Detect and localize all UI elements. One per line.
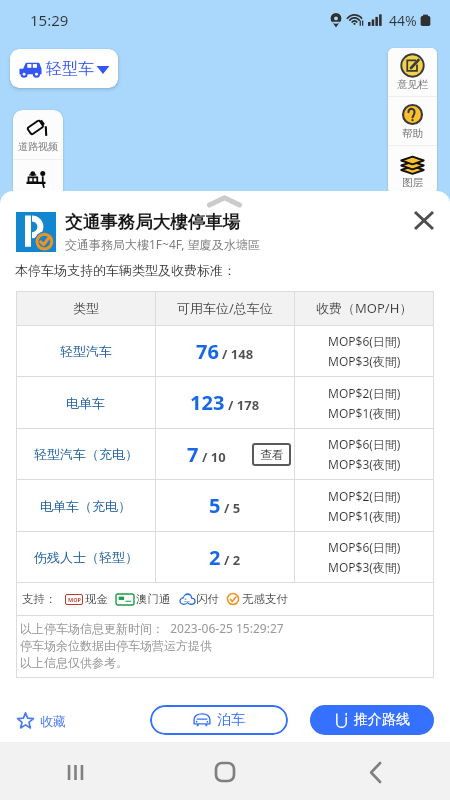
staticText: MOP$1(夜間) bbox=[328, 405, 401, 421]
staticText: 闪付 bbox=[196, 592, 219, 606]
button[interactable]: 帮助 bbox=[388, 97, 437, 145]
staticText: 停车场余位数据由停车场营运方提供 bbox=[20, 638, 212, 653]
staticText: 泊车 bbox=[217, 711, 245, 729]
staticText: 5 bbox=[209, 492, 221, 519]
staticText: / 10 bbox=[202, 448, 226, 466]
staticText: 76 bbox=[196, 338, 219, 365]
button[interactable]: 推介路线 bbox=[310, 705, 434, 735]
staticText: MOP$3(夜間) bbox=[328, 559, 401, 575]
button[interactable]: 图层 bbox=[388, 146, 437, 194]
staticText: 收费（MOP/H） bbox=[316, 299, 413, 317]
staticText: 以上停车场信息更新时间： 2023-06-25 15:29:27 bbox=[20, 620, 284, 636]
button[interactable]: 泊车 bbox=[150, 705, 288, 735]
staticText: / 5 bbox=[224, 499, 241, 517]
button[interactable]: Home bbox=[150, 742, 300, 800]
staticText: 本停车场支持的车辆类型及收费标准： bbox=[15, 262, 236, 278]
staticText: MOP bbox=[68, 596, 81, 603]
staticText: 伤残人士（轻型） bbox=[34, 549, 138, 565]
staticText: 44% bbox=[389, 11, 417, 30]
button[interactable]: Recents bbox=[0, 742, 150, 800]
staticText: MOP$6(日間) bbox=[328, 436, 401, 452]
staticText: MOP$1(夜間) bbox=[328, 508, 401, 524]
staticText: 电单车（充电） bbox=[40, 498, 131, 514]
staticText: MOP$6(日間) bbox=[328, 333, 401, 349]
staticText: 推介路线 bbox=[354, 711, 410, 729]
staticText: 无感支付 bbox=[242, 592, 288, 606]
staticText: 可用车位/总车位 bbox=[177, 299, 273, 317]
staticText: 7 bbox=[187, 441, 199, 468]
staticText: / 148 bbox=[222, 345, 254, 363]
button[interactable]: 意见栏 bbox=[388, 48, 437, 96]
staticText: / 2 bbox=[224, 551, 241, 569]
staticText: 类型 bbox=[73, 300, 99, 316]
staticText: 2 bbox=[209, 544, 221, 571]
staticText: MOP$3(夜間) bbox=[328, 456, 401, 472]
staticText: 支持： bbox=[22, 592, 57, 606]
button[interactable]: 查看 bbox=[252, 443, 291, 466]
staticText: 交通事務局大樓停車場 bbox=[65, 211, 240, 233]
staticText: MOP$3(夜間) bbox=[328, 353, 401, 369]
staticText: MOP$6(日間) bbox=[328, 539, 401, 555]
button[interactable]: 收藏 bbox=[17, 708, 74, 733]
button[interactable]: 道路视频 bbox=[13, 110, 63, 159]
button[interactable]: Close bbox=[406, 202, 442, 238]
staticText: 轻型车 bbox=[46, 59, 94, 79]
button[interactable]: 轻型车 bbox=[10, 49, 118, 88]
staticText: 123 bbox=[190, 389, 225, 416]
staticText: 道路视频 bbox=[18, 140, 58, 153]
staticText: 电单车 bbox=[66, 395, 105, 411]
staticText: / 178 bbox=[228, 396, 260, 414]
staticText: MOP$2(日間) bbox=[328, 488, 401, 504]
staticText: 15:29 bbox=[30, 10, 69, 30]
staticText: 图层 bbox=[402, 176, 423, 189]
button[interactable]: Back bbox=[300, 742, 450, 800]
staticText: MOP$2(日間) bbox=[328, 385, 401, 401]
button[interactable]: Traffic police bbox=[13, 160, 63, 209]
staticText: 帮助 bbox=[402, 127, 423, 140]
staticText: 澳门通 bbox=[136, 592, 171, 606]
staticText: 交通事務局大樓1F~4F, 望廈及水塘區 bbox=[65, 236, 260, 252]
staticText: 收藏 bbox=[40, 713, 66, 729]
staticText: 意见栏 bbox=[397, 78, 429, 91]
staticText: 查看 bbox=[260, 447, 284, 462]
staticText: 轻型汽车（充电） bbox=[34, 446, 138, 462]
staticText: 现金 bbox=[85, 592, 108, 606]
staticText: 以上信息仅供参考。 bbox=[20, 655, 128, 670]
staticText: 轻型汽车 bbox=[60, 343, 112, 359]
